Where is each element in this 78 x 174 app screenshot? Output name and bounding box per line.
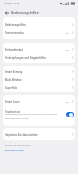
button[interactable]: Smart Cover — [3, 97, 75, 105]
staticText: Geplantes Ein-/Ausschalten — [5, 133, 38, 136]
staticText: Bedienungshilfen — [11, 10, 39, 14]
button[interactable]: Bedienungshilfen — [3, 20, 75, 28]
staticText: Seniorenmodus — [5, 31, 24, 34]
button[interactable]: Suchen Sie nach anderen — [0, 144, 78, 151]
staticText: Mittwoch, 10:38 — [4, 2, 19, 5]
staticText: Einhandmodus — [5, 48, 23, 51]
button[interactable]: Seniorenmodus — [3, 28, 75, 36]
button[interactable]: Einhandmodus — [3, 45, 75, 53]
staticText: Suchen Sie nach anderen — [5, 144, 31, 147]
staticText: Touchschutz — [5, 110, 20, 113]
button[interactable]: Back — [3, 9, 10, 16]
button[interactable]: Multi-Window — [3, 75, 75, 83]
staticText: Aus — [65, 48, 70, 51]
staticText: Smart Sensing — [5, 70, 23, 73]
staticText: Aus — [65, 100, 70, 103]
button[interactable]: Touchschutz — [3, 105, 75, 124]
staticText: Aus — [65, 31, 70, 34]
staticText: SuperHub — [5, 86, 17, 89]
button[interactable]: Smart Sensing — [3, 67, 75, 75]
staticText: Multi-Window — [5, 78, 22, 81]
button[interactable]: SuperHub — [3, 83, 75, 91]
button[interactable]: Verknüpfungen und Eingabehilfen — [3, 53, 75, 61]
staticText: Smart Cover — [5, 100, 20, 103]
staticText: Versehentliche Bedienung des Telefons in… — [5, 113, 58, 119]
staticText: Verknüpfungen und Eingabehilfen — [5, 56, 47, 59]
staticText: Bedienungshilfen — [5, 23, 27, 26]
button[interactable]: Geplantes Ein-/Ausschalten — [3, 130, 75, 138]
staticText: EINSTELLUNGEN — [5, 148, 25, 151]
